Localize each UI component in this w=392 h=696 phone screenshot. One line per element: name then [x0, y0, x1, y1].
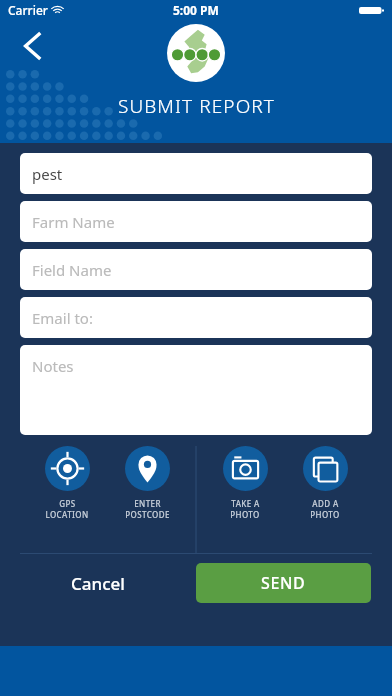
staticText: TAKE A — [231, 498, 260, 509]
button[interactable]: Back — [10, 26, 50, 66]
button[interactable]: Cancel — [0, 563, 196, 603]
button[interactable]: Take a Photo — [210, 443, 280, 520]
staticText: 5:00 PM — [173, 2, 219, 18]
button[interactable]: Enter Postcode — [112, 443, 182, 520]
staticText: LOCATION — [45, 509, 89, 520]
button[interactable]: SEND — [196, 563, 371, 603]
button[interactable]: Field Name — [20, 249, 372, 290]
staticText: GPS — [59, 498, 76, 509]
staticText: SUBMIT REPORT — [118, 93, 275, 119]
staticText: PHOTO — [310, 509, 340, 520]
staticText: ENTER — [134, 498, 161, 509]
staticText: PHOTO — [230, 509, 260, 520]
staticText: Email to: — [32, 308, 93, 328]
staticText: Field Name — [32, 260, 112, 280]
staticText: ADD A — [312, 498, 339, 509]
staticText: Carrier — [8, 2, 48, 18]
staticText: pest — [32, 164, 63, 184]
button[interactable]: Notes — [20, 345, 372, 435]
button[interactable]: Email to: — [20, 297, 372, 338]
button[interactable]: GPS Location — [32, 443, 102, 520]
staticText: POSTCODE — [125, 509, 170, 520]
button[interactable]: Add a Photo — [290, 443, 360, 520]
staticText: Notes — [32, 356, 74, 376]
staticText: Farm Name — [32, 212, 115, 232]
button[interactable]: pest — [20, 153, 372, 194]
staticText: Cancel — [71, 572, 125, 595]
button[interactable]: Farm Name — [20, 201, 372, 242]
staticText: SEND — [261, 572, 306, 594]
